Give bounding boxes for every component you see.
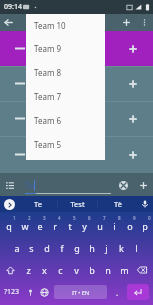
button[interactable]: g [69, 237, 84, 259]
staticText: Team 5 [34, 139, 62, 150]
staticText: 7 [103, 215, 106, 221]
staticText: o [127, 220, 133, 232]
staticText: n [105, 264, 111, 276]
button[interactable]: Test [58, 196, 97, 212]
button[interactable]: Decrease [0, 66, 40, 101]
staticText: q [6, 220, 12, 232]
button[interactable]: m [116, 259, 132, 281]
staticText: Team 10 [34, 20, 66, 31]
staticText: 3 [43, 215, 46, 221]
button[interactable]: Te [18, 196, 57, 212]
button[interactable]: . [110, 281, 124, 303]
button[interactable]: v [68, 259, 84, 281]
button[interactable]: Add team [133, 175, 153, 195]
button[interactable]: Team 5 [26, 132, 105, 156]
button[interactable]: Increase [113, 136, 153, 173]
staticText: 8 [118, 215, 121, 221]
button[interactable]: x [36, 259, 52, 281]
staticText: Team 9 [34, 43, 62, 54]
button[interactable]: Add [117, 14, 136, 31]
staticText: k [119, 242, 124, 254]
staticText: Team 8 [34, 67, 62, 78]
button[interactable]: Increase [113, 66, 153, 101]
staticText: v [74, 264, 79, 276]
button[interactable]: Tè [98, 196, 137, 212]
staticText: h [89, 242, 95, 254]
staticText: m [120, 264, 129, 276]
button[interactable]: Team 9 [26, 36, 105, 60]
button[interactable]: s [24, 237, 39, 259]
button[interactable]: k [114, 237, 129, 259]
staticText: 1 [13, 215, 16, 221]
button[interactable]: a [9, 237, 24, 259]
button[interactable]: t [62, 214, 77, 237]
staticText: p [142, 220, 148, 232]
button[interactable]: e [32, 214, 47, 237]
button[interactable]: u [92, 214, 107, 237]
staticText: x [42, 264, 47, 276]
staticText: c [58, 264, 63, 276]
button[interactable]: Decrease [0, 31, 40, 66]
staticText: Team 7 [34, 91, 62, 102]
staticText: w [21, 220, 29, 232]
button[interactable]: o [122, 214, 137, 237]
button[interactable]: Expand suggestions [4, 199, 15, 210]
button[interactable]: More options [136, 14, 153, 31]
staticText: ?123 [4, 287, 20, 297]
button[interactable]: Team 8 [26, 60, 105, 84]
button[interactable]: n [100, 259, 116, 281]
button[interactable]: l [129, 237, 144, 259]
staticText: z [26, 264, 31, 276]
button[interactable]: Increase [113, 31, 153, 66]
button[interactable]: Decrease [0, 101, 40, 136]
button[interactable]: w [17, 214, 32, 237]
button[interactable]: y [77, 214, 92, 237]
staticText: f [60, 242, 64, 254]
button[interactable]: Voice input [137, 196, 153, 212]
button[interactable]: IT • EN [54, 285, 107, 299]
staticText: l [135, 242, 138, 254]
staticText: j [105, 242, 108, 254]
button[interactable]: Clear [113, 175, 133, 195]
button[interactable]: Enter [127, 284, 149, 300]
staticText: 9 [133, 215, 136, 221]
staticText: 09:14 [4, 2, 22, 12]
button[interactable]: Change language [37, 281, 51, 303]
button[interactable]: c [52, 259, 68, 281]
button[interactable]: Emoji [23, 281, 37, 303]
staticText: Team 6 [34, 115, 62, 126]
staticText: i [113, 220, 116, 232]
button[interactable]: h [84, 237, 99, 259]
staticText: 6 [88, 215, 91, 221]
button[interactable]: z [20, 259, 36, 281]
button[interactable]: Increase [113, 101, 153, 136]
staticText: t [68, 220, 72, 232]
staticText: b [89, 264, 95, 276]
staticText: 2 [28, 215, 31, 221]
button[interactable]: j [99, 237, 114, 259]
button[interactable]: q [1, 214, 17, 237]
staticText: y [82, 220, 87, 232]
staticText: u [97, 220, 103, 232]
button[interactable]: Team 7 [26, 84, 105, 108]
button[interactable]: b [84, 259, 100, 281]
staticText: 4 [58, 215, 61, 221]
button[interactable]: Backspace [132, 259, 152, 281]
button[interactable]: r [47, 214, 62, 237]
button[interactable]: p [137, 214, 152, 237]
staticText: s [29, 242, 34, 254]
button[interactable]: List [0, 175, 20, 195]
staticText: 5 [73, 215, 76, 221]
button[interactable]: Team 6 [26, 108, 105, 132]
staticText: . [116, 287, 119, 298]
button[interactable]: Decrease [0, 136, 40, 173]
button[interactable]: d [39, 237, 54, 259]
button[interactable]: Back [0, 14, 17, 31]
button[interactable]: f [54, 237, 69, 259]
button[interactable]: Te [25, 176, 111, 194]
button[interactable]: i [107, 214, 122, 237]
button[interactable]: Shift [1, 259, 20, 281]
button[interactable]: ?123 [1, 281, 23, 303]
staticText: Te [25, 180, 34, 191]
button[interactable]: Team 10 [26, 14, 105, 36]
